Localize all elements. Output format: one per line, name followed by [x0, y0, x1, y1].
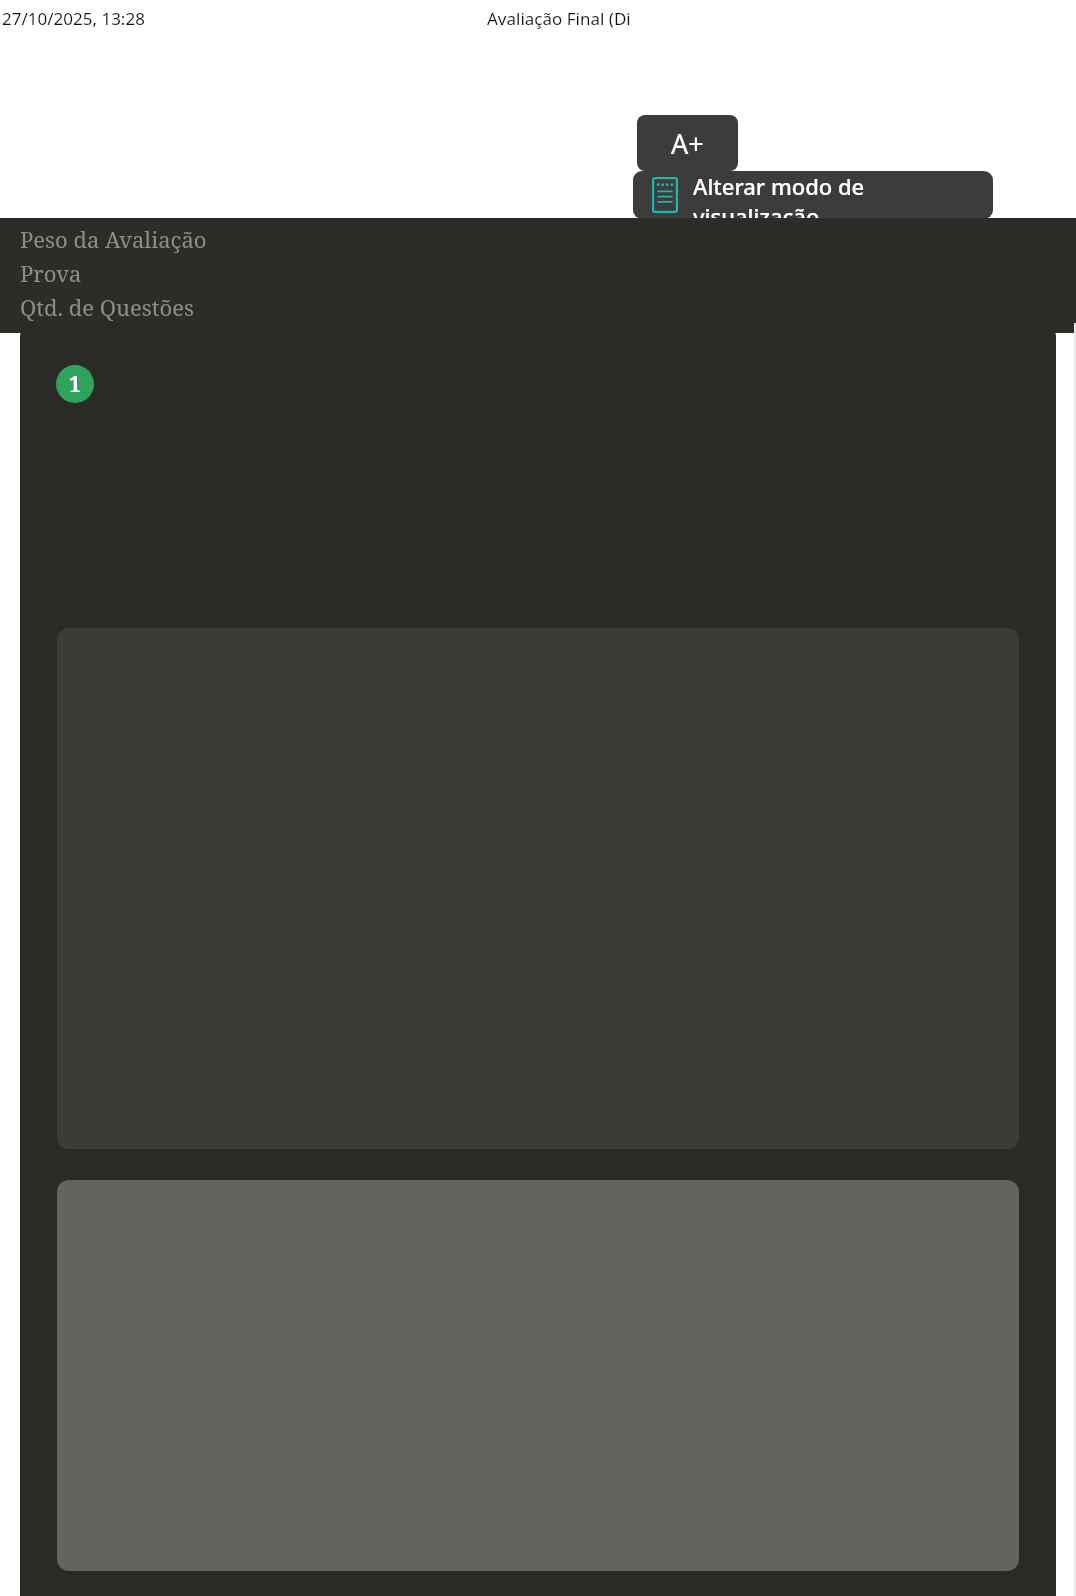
button[interactable]: Alterar modo de visualização [633, 171, 993, 219]
staticText: 1 [69, 370, 81, 399]
staticText: Alterar modo de visualização [693, 171, 993, 219]
staticText: Qtd. de Questões [20, 292, 194, 322]
staticText: A+ [671, 125, 704, 162]
button[interactable]: 1 [20, 323, 1056, 1596]
staticText: Avaliação Final (Di [487, 7, 631, 30]
staticText: Peso da Avaliação [20, 224, 207, 254]
staticText: Prova [20, 258, 82, 288]
button[interactable]: A+ [637, 115, 738, 171]
other: Alterar modo de visualização [652, 177, 678, 213]
staticText: 27/10/2025, 13:28 [2, 7, 145, 30]
